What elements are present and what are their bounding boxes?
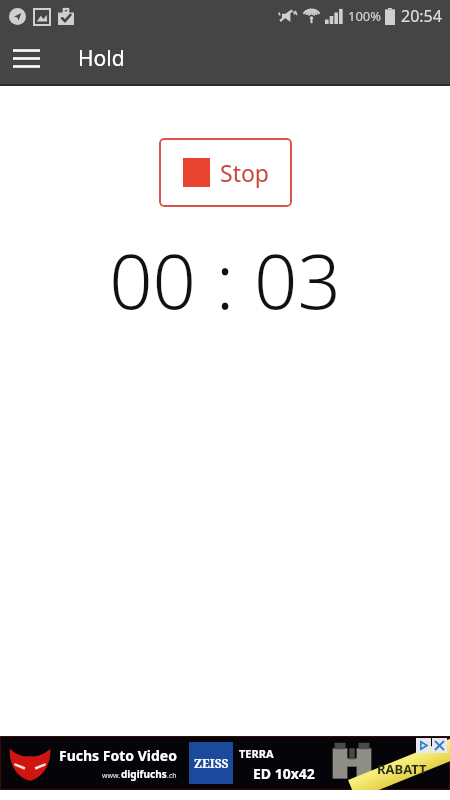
button[interactable]: Ad information xyxy=(416,738,431,753)
staticText: www. xyxy=(102,771,121,781)
staticText: Stop xyxy=(220,157,269,188)
staticText: digifuchs xyxy=(121,767,167,781)
staticText: RABATT xyxy=(377,760,427,778)
staticText: Hold xyxy=(78,44,125,73)
button[interactable]: Advertisement: Fuchs Foto Video xyxy=(1,737,449,789)
staticText: TERRA xyxy=(239,746,274,761)
staticText: ED 10x42 xyxy=(253,764,315,783)
button[interactable]: Stop xyxy=(159,138,292,207)
staticText: 00 : 03 xyxy=(109,228,341,332)
staticText: 100% xyxy=(348,7,382,25)
staticText: ZEISS xyxy=(194,755,229,771)
staticText: 20:54 xyxy=(401,5,442,27)
staticText: .ch xyxy=(167,771,177,781)
button[interactable]: Close ad xyxy=(432,738,447,753)
button[interactable]: Open navigation menu xyxy=(6,38,46,78)
staticText: Fuchs Foto Video xyxy=(59,746,177,765)
